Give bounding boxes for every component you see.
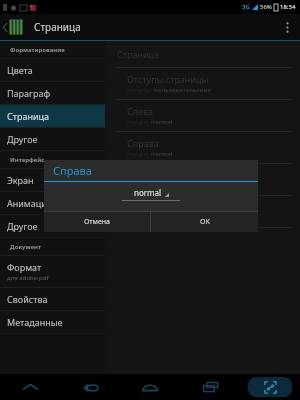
button[interactable]: Справа xyxy=(105,132,300,163)
staticText: margin: xyxy=(127,118,149,126)
button[interactable]: Экран xyxy=(0,169,105,191)
button[interactable]: Анимация xyxy=(0,192,105,214)
button[interactable]: Формат xyxy=(0,256,105,287)
staticText: для adobe-pdf xyxy=(7,274,49,282)
staticText: OK xyxy=(200,217,210,227)
button[interactable]: Сверху xyxy=(105,164,300,195)
staticText: Отступы страницы xyxy=(127,73,209,85)
button[interactable]: Back xyxy=(68,377,112,397)
button[interactable]: Отступы страницы xyxy=(105,68,300,99)
staticText: 3G xyxy=(242,3,250,11)
button[interactable]: Отмена xyxy=(44,212,150,232)
button[interactable]: Цвета xyxy=(0,59,105,81)
staticText: Другое xyxy=(7,133,38,145)
button[interactable]: Свойства xyxy=(0,288,105,310)
staticText: Метаданные xyxy=(7,316,63,328)
staticText: Документ xyxy=(10,243,41,251)
staticText: normal xyxy=(134,187,162,198)
button[interactable]: Страница xyxy=(0,105,105,127)
staticText: normal xyxy=(151,118,173,126)
staticText: Интерфейс xyxy=(10,156,45,164)
button[interactable]: Toggle fullscreen xyxy=(248,377,292,397)
button[interactable]: More options xyxy=(274,14,300,40)
staticText: Параграф xyxy=(7,87,51,99)
staticText: 18:54 xyxy=(280,3,296,11)
staticText: Анимация xyxy=(7,197,53,209)
button[interactable]: OK xyxy=(151,212,258,232)
staticText: Страница xyxy=(7,110,50,122)
staticText: 56% xyxy=(260,3,272,11)
button[interactable]: Другое xyxy=(0,215,105,237)
staticText: Другое xyxy=(7,220,38,232)
staticText: Цвета xyxy=(7,64,33,76)
staticText: Справа xyxy=(53,163,92,178)
button[interactable]: Back xyxy=(3,14,23,40)
button[interactable]: Menu xyxy=(8,377,52,397)
staticText: normal xyxy=(151,182,173,190)
staticText: Слева xyxy=(127,105,154,117)
staticText: Формат xyxy=(7,261,42,273)
staticText: normal xyxy=(151,150,173,158)
button[interactable]: Home xyxy=(128,377,172,397)
button[interactable]: Другое xyxy=(0,128,105,150)
staticText: Отмена xyxy=(84,217,111,227)
button[interactable]: Recent apps xyxy=(188,377,232,397)
staticText: Страница xyxy=(34,20,81,34)
button[interactable]: Снизу xyxy=(105,196,300,227)
staticText: Справа xyxy=(127,137,159,149)
staticText: Свойства xyxy=(7,293,48,305)
button[interactable]: Параграф xyxy=(0,82,105,104)
staticText: Страница xyxy=(117,48,160,60)
staticText: Снизу xyxy=(127,201,153,213)
staticText: margin: xyxy=(127,150,149,158)
button[interactable]: Метаданные xyxy=(0,311,105,333)
staticText: пользовательские xyxy=(154,86,211,94)
staticText: Форматирование xyxy=(10,46,65,54)
staticText: отступы: xyxy=(127,86,152,94)
button[interactable]: normal xyxy=(122,187,180,201)
staticText: Экран xyxy=(7,174,34,186)
